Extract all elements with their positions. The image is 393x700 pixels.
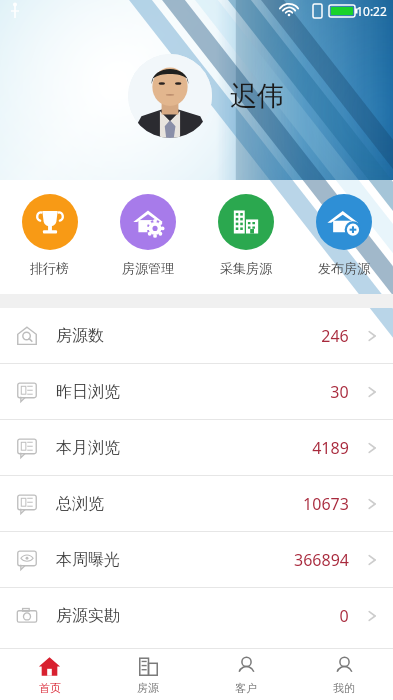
staticText: 昨日浏览 xyxy=(56,382,120,402)
staticText: 迟伟 xyxy=(230,79,284,113)
staticText: 房源 xyxy=(137,681,159,695)
staticText: 房源实勘 xyxy=(56,606,120,626)
button[interactable]: 昨日浏览 xyxy=(0,364,393,419)
button[interactable]: 房源管理 xyxy=(99,180,197,294)
staticText: 10:22 xyxy=(356,3,387,19)
button[interactable]: 排行榜 xyxy=(0,180,99,294)
button[interactable]: 采集房源 xyxy=(197,180,295,294)
button[interactable]: 本月浏览 xyxy=(0,420,393,475)
staticText: 房源数 xyxy=(56,326,104,346)
staticText: 0 xyxy=(339,605,349,627)
button[interactable]: 我的 xyxy=(295,649,393,700)
button[interactable]: 房源 xyxy=(99,649,197,700)
staticText: 366894 xyxy=(294,549,349,571)
staticText: 10673 xyxy=(303,493,349,515)
button[interactable]: 房源数 xyxy=(0,308,393,363)
staticText: 采集房源 xyxy=(220,260,272,276)
staticText: 发布房源 xyxy=(318,260,370,276)
staticText: 排行榜 xyxy=(30,260,69,276)
staticText: 4189 xyxy=(312,437,349,459)
button[interactable]: 发布房源 xyxy=(295,180,393,294)
staticText: 30 xyxy=(330,381,349,403)
staticText: 总浏览 xyxy=(56,494,104,514)
staticText: 首页 xyxy=(39,681,61,695)
staticText: 本周曝光 xyxy=(56,550,120,570)
button[interactable]: 首页 xyxy=(0,649,99,700)
staticText: 我的 xyxy=(333,681,355,695)
staticText: 客户 xyxy=(235,681,257,695)
staticText: 本月浏览 xyxy=(56,438,120,458)
button[interactable]: Profile photo xyxy=(128,54,212,138)
button[interactable]: 本周曝光 xyxy=(0,532,393,587)
button[interactable]: 总浏览 xyxy=(0,476,393,531)
button[interactable]: 房源实勘 xyxy=(0,588,393,643)
staticText: 房源管理 xyxy=(122,260,174,276)
button[interactable]: 客户 xyxy=(197,649,295,700)
staticText: 246 xyxy=(321,325,349,347)
